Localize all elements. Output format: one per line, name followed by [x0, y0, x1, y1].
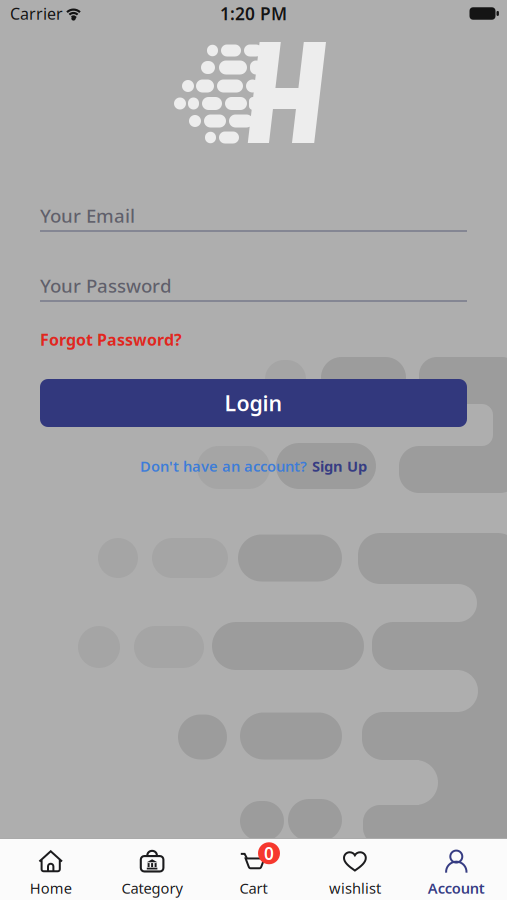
button[interactable]: Login [40, 379, 467, 427]
staticText: Carrier [10, 3, 63, 24]
button[interactable]: Your Password [40, 276, 467, 302]
staticText: Category [122, 878, 183, 898]
button[interactable]: Account [406, 838, 507, 900]
staticText: 0 [264, 842, 274, 865]
staticText: wishlist [329, 878, 381, 898]
button[interactable]: Sign Up [312, 456, 367, 476]
button[interactable]: Home [0, 838, 101, 900]
button[interactable]: 0 [203, 838, 304, 900]
button[interactable]: Category [101, 838, 203, 900]
button[interactable]: wishlist [304, 838, 406, 900]
staticText: Your Email [40, 203, 135, 228]
staticText: 1:20 PM [220, 2, 287, 25]
staticText: Home [30, 878, 72, 898]
button[interactable]: Your Email [40, 206, 467, 232]
staticText: Cart [239, 878, 267, 898]
staticText: Don't have an account? [140, 456, 307, 476]
staticText: Your Password [40, 273, 172, 298]
button[interactable]: Forgot Password? [40, 329, 182, 350]
staticText: Forgot Password? [40, 329, 182, 350]
staticText: Login [224, 389, 282, 417]
staticText: Sign Up [312, 456, 367, 476]
staticText: Account [428, 878, 485, 898]
